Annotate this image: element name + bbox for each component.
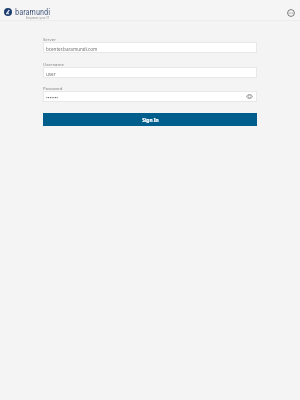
staticText: baramundi: [15, 7, 51, 17]
button[interactable]: user: [43, 67, 257, 78]
button[interactable]: Sign In: [43, 113, 257, 126]
button[interactable]: bcenter.baramundi.com: [43, 42, 257, 53]
staticText: user: [46, 71, 56, 77]
staticText: Server: [43, 36, 56, 42]
staticText: Sign In: [142, 117, 159, 124]
staticText: Username: [43, 61, 64, 67]
button[interactable]: Show password: [246, 93, 253, 100]
button[interactable]: •••••••: [43, 91, 257, 102]
staticText: Password: [43, 85, 63, 91]
staticText: •••••••: [46, 95, 59, 101]
staticText: bcenter.baramundi.com: [46, 46, 98, 52]
staticText: Empower your IT: [25, 16, 49, 20]
button[interactable]: More options: [287, 9, 295, 17]
